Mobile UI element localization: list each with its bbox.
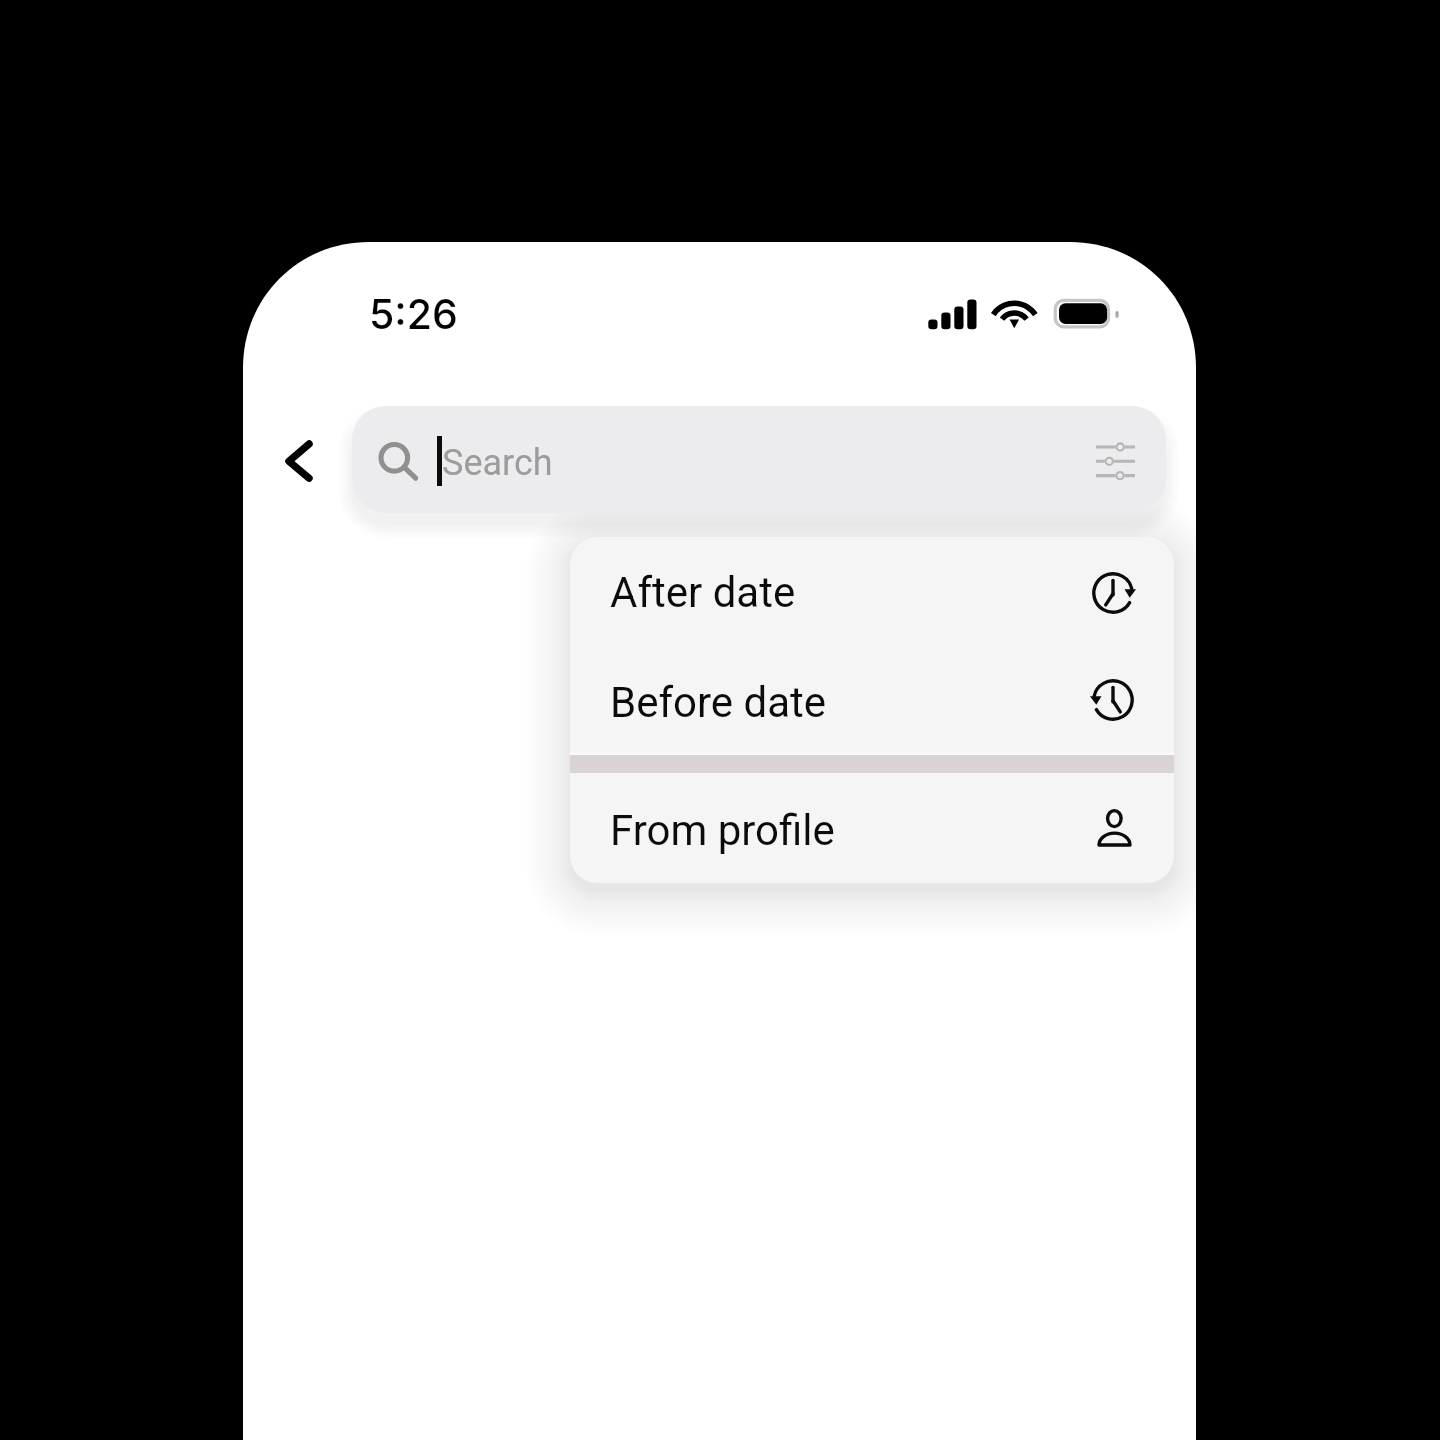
button[interactable]: After date <box>570 537 1174 647</box>
staticText: Before date <box>610 678 827 727</box>
staticText: Search <box>442 442 553 484</box>
button[interactable]: Back <box>277 423 337 501</box>
button[interactable]: Search filters <box>1086 434 1145 493</box>
staticText: 5:26 <box>369 289 458 339</box>
button[interactable]: From profile <box>570 774 1174 883</box>
staticText: From profile <box>610 806 835 855</box>
button[interactable]: Before date <box>570 647 1174 755</box>
button[interactable]: Search <box>352 406 1166 513</box>
staticText: After date <box>610 568 796 617</box>
